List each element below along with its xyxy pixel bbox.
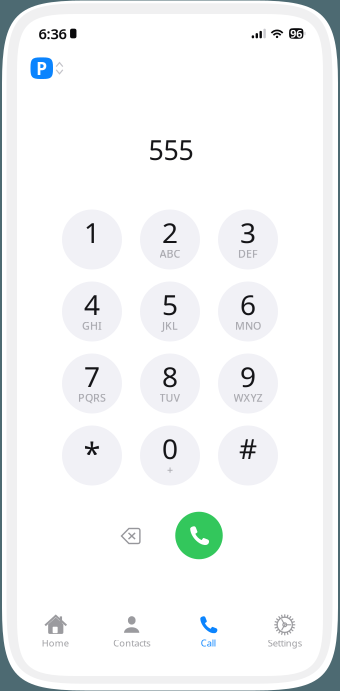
staticText: GHI <box>82 318 102 333</box>
button[interactable]: 6 <box>218 281 278 341</box>
staticText: TUV <box>159 390 180 405</box>
staticText: + <box>167 462 173 477</box>
staticText: PQRS <box>78 390 106 405</box>
staticText: MNO <box>235 318 261 333</box>
staticText: P <box>36 57 47 80</box>
button[interactable]: Contacts <box>93 608 170 656</box>
button[interactable]: 8 <box>140 353 200 413</box>
staticText: 6:36 <box>38 24 66 43</box>
button[interactable]: Call <box>175 512 223 559</box>
button[interactable]: Settings <box>246 608 323 656</box>
button[interactable]: # <box>218 425 278 485</box>
staticText: Settings <box>268 637 302 649</box>
button[interactable]: 0 <box>140 425 200 485</box>
button[interactable]: SIM selection <box>30 55 80 81</box>
staticText: * <box>83 432 100 473</box>
button[interactable]: Home <box>17 608 93 656</box>
button[interactable]: 1 <box>62 209 122 269</box>
staticText: Contacts <box>113 637 150 649</box>
staticText: # <box>239 430 257 467</box>
staticText: 3 <box>240 214 256 251</box>
staticText: JKL <box>162 318 178 333</box>
button[interactable]: * <box>62 425 122 485</box>
staticText: 4 <box>84 286 100 323</box>
staticText: 1 <box>84 214 100 251</box>
button[interactable]: 2 <box>140 209 200 269</box>
staticText: Call <box>201 637 216 649</box>
staticText: DEF <box>238 246 258 261</box>
staticText: 555 <box>148 132 193 168</box>
button[interactable]: Call <box>170 608 246 656</box>
staticText: 6 <box>240 286 256 323</box>
button[interactable]: 5 <box>140 281 200 341</box>
staticText: 8 <box>162 358 178 395</box>
staticText: ABC <box>159 246 180 261</box>
staticText: 0 <box>162 430 178 467</box>
staticText: 96 <box>290 26 302 41</box>
staticText: 5 <box>162 286 178 323</box>
staticText: Home <box>42 637 69 649</box>
staticText: 7 <box>84 358 100 395</box>
button[interactable]: 7 <box>62 353 122 413</box>
button[interactable]: Delete <box>109 514 153 558</box>
staticText: 9 <box>240 358 256 395</box>
button[interactable]: 4 <box>62 281 122 341</box>
button[interactable]: 3 <box>218 209 278 269</box>
button[interactable]: 9 <box>218 353 278 413</box>
staticText: 2 <box>162 214 178 251</box>
staticText: WXYZ <box>233 390 262 405</box>
